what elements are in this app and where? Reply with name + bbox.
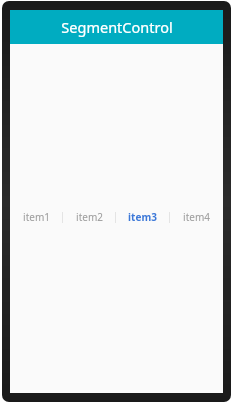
staticText: item2 (76, 210, 103, 224)
button[interactable]: item3 (116, 206, 169, 228)
staticText: item4 (183, 210, 210, 224)
staticText: item3 (128, 210, 157, 224)
button[interactable]: item4 (170, 206, 223, 228)
staticText: SegmentControl (61, 17, 173, 37)
staticText: item1 (23, 210, 50, 224)
button[interactable]: item2 (63, 206, 115, 228)
button[interactable]: item1 (10, 206, 62, 228)
